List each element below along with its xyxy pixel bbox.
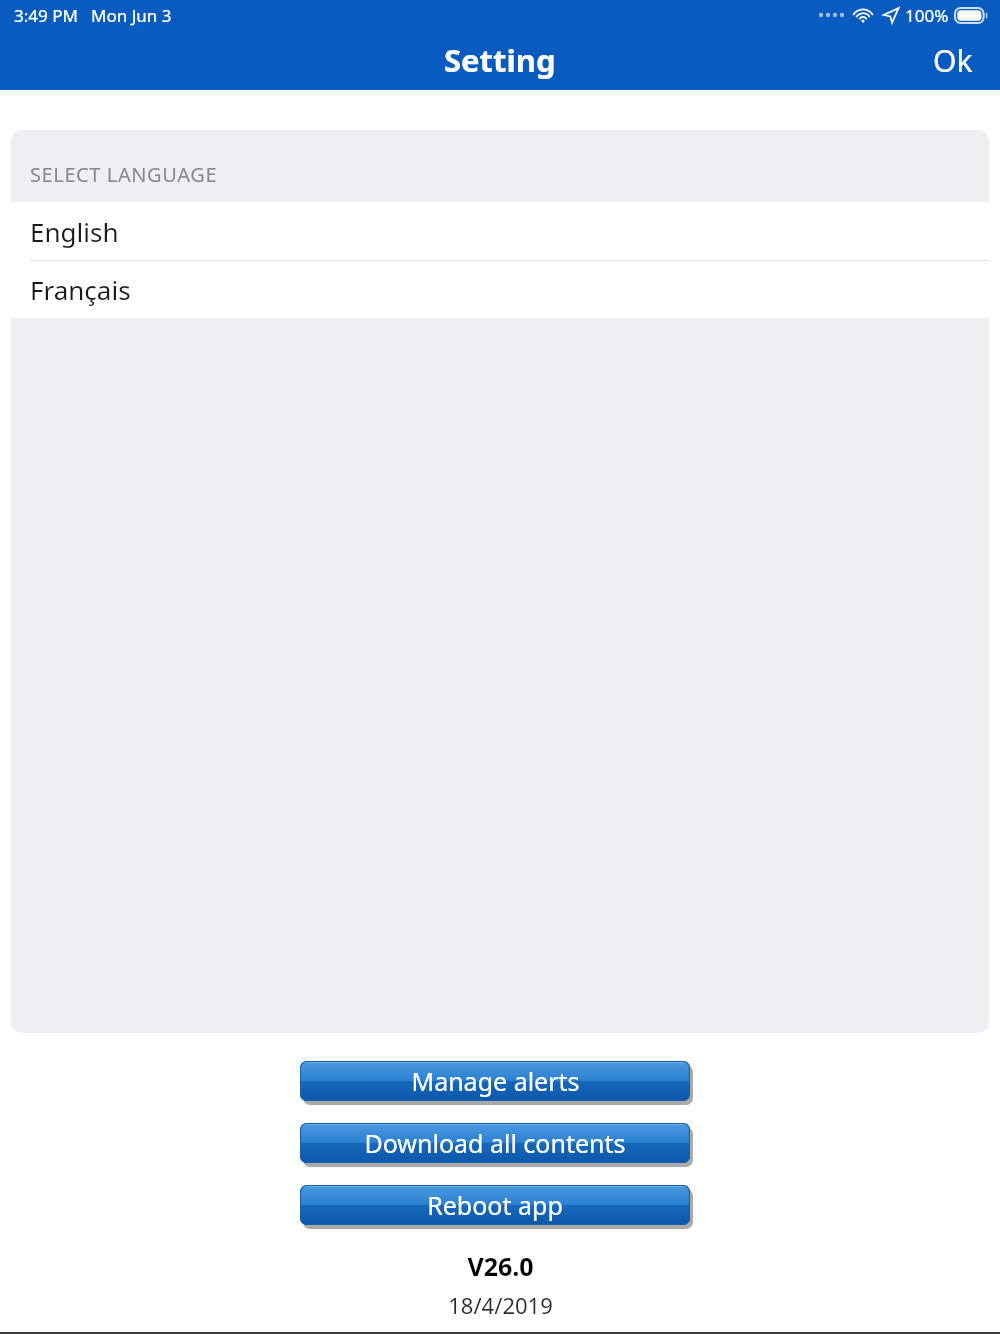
button[interactable]: Manage alerts bbox=[300, 1061, 690, 1101]
button[interactable]: Download all contents bbox=[300, 1123, 690, 1163]
staticText: 3:49 PM bbox=[14, 4, 78, 27]
staticText: SELECT LANGUAGE bbox=[30, 161, 218, 188]
button[interactable]: Français bbox=[11, 261, 989, 318]
staticText: Mon Jun 3 bbox=[91, 4, 172, 27]
staticText: Français bbox=[30, 272, 131, 307]
staticText: 18/4/2019 bbox=[448, 1290, 553, 1320]
staticText: Manage alerts bbox=[411, 1064, 580, 1098]
button[interactable]: English bbox=[11, 202, 989, 260]
staticText: V26.0 bbox=[467, 1249, 534, 1283]
staticText: English bbox=[30, 214, 119, 249]
button[interactable]: Ok bbox=[906, 30, 1000, 90]
staticText: 100% bbox=[905, 4, 949, 27]
staticText: Download all contents bbox=[364, 1126, 626, 1160]
staticText: Ok bbox=[933, 40, 973, 81]
button[interactable]: Reboot app bbox=[300, 1185, 690, 1225]
staticText: Setting bbox=[444, 39, 556, 81]
staticText: Reboot app bbox=[427, 1188, 563, 1222]
